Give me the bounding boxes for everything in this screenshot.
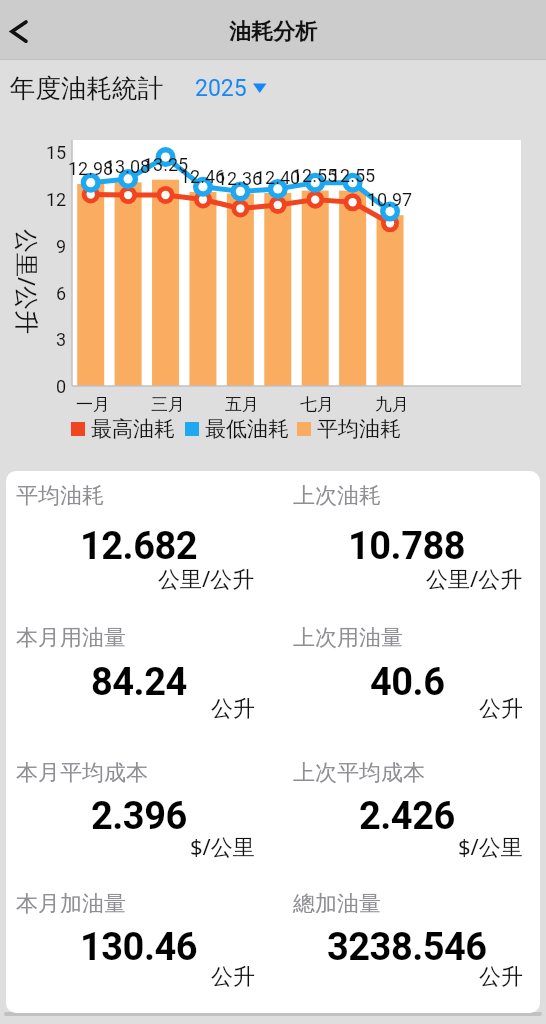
staticText: 公里/公升 [158, 563, 255, 593]
staticText: 0 [56, 376, 67, 397]
staticText: 6 [56, 283, 67, 304]
staticText: 上次用油量 [293, 624, 403, 652]
staticText: 一月 [76, 394, 110, 415]
staticText: $/公里 [190, 831, 255, 861]
staticText: 10.97 [367, 189, 413, 210]
staticText: 130.46 [80, 925, 198, 965]
staticText: $/公里 [458, 831, 523, 861]
staticText: 最高油耗 [91, 416, 175, 442]
staticText: 12.46 [180, 166, 226, 187]
staticText: 公升 [479, 963, 523, 991]
staticText: 三月 [151, 394, 185, 415]
staticText: 本月用油量 [16, 624, 126, 652]
staticText: 公里/公升 [11, 229, 44, 334]
staticText: 10.788 [348, 524, 466, 564]
staticText: 40.6 [370, 660, 445, 700]
staticText: 2025 [195, 75, 247, 102]
staticText: 平均油耗 [16, 482, 104, 510]
staticText: 12.40 [255, 167, 301, 188]
staticText: 12 [46, 189, 67, 210]
staticText: 公升 [479, 695, 523, 723]
staticText: 13.08 [105, 156, 151, 177]
staticText: 七月 [300, 394, 334, 415]
staticText: 公升 [211, 695, 255, 723]
staticText: 總加油量 [293, 890, 381, 918]
staticText: 公升 [211, 963, 255, 991]
staticText: 上次平均成本 [293, 759, 425, 787]
staticText: 12.682 [80, 524, 198, 564]
staticText: 3 [56, 329, 67, 350]
staticText: 15 [46, 142, 67, 163]
staticText: 公里/公升 [426, 563, 523, 593]
staticText: 13.25 [143, 154, 189, 175]
staticText: 3238.546 [327, 925, 487, 965]
staticText: 平均油耗 [317, 416, 401, 442]
staticText: 84.24 [91, 660, 187, 700]
staticText: 上次油耗 [293, 482, 381, 510]
staticText: 2.396 [91, 794, 187, 834]
staticText: 2.426 [359, 794, 455, 834]
button[interactable] [0, 0, 48, 48]
staticText: 12.36 [217, 168, 263, 189]
staticText: 12.55 [330, 165, 376, 186]
staticText: 年度油耗統計 [10, 72, 163, 104]
staticText: 12.55 [292, 165, 338, 186]
staticText: 本月平均成本 [16, 759, 148, 787]
staticText: 9 [56, 236, 67, 257]
staticText: 本月加油量 [16, 890, 126, 918]
staticText: 九月 [375, 394, 409, 415]
staticText: 油耗分析 [229, 18, 317, 46]
staticText: 五月 [225, 394, 259, 415]
button[interactable]: 2025 [188, 70, 274, 107]
staticText: 12.98 [68, 158, 114, 179]
staticText: 最低油耗 [205, 416, 289, 442]
